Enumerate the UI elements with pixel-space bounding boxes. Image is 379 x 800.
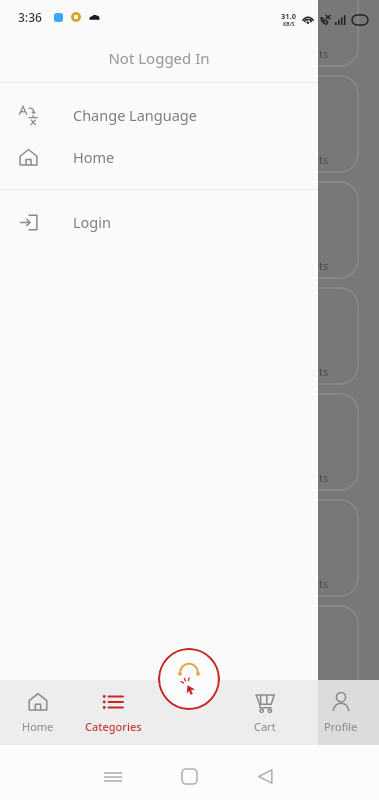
- staticText: Home: [22, 719, 54, 734]
- staticText: Categories: [85, 719, 142, 734]
- button[interactable]: Categories: [75, 680, 151, 745]
- staticText: 31.0: [281, 11, 296, 21]
- staticText: KB/S: [283, 21, 295, 28]
- button[interactable]: Home: [0, 680, 75, 745]
- button[interactable]: Recent apps: [75, 753, 151, 800]
- staticText: ts: [319, 258, 329, 273]
- staticText: ts: [319, 152, 329, 167]
- staticText: 3:36: [18, 9, 42, 25]
- staticText: Cart: [254, 719, 276, 734]
- staticText: ts: [319, 470, 329, 485]
- button[interactable]: Change Language: [0, 94, 318, 136]
- staticText: Change Language: [73, 105, 197, 125]
- button[interactable]: Customer support: [158, 648, 220, 710]
- button[interactable]: Home: [151, 753, 227, 800]
- button[interactable]: Back: [227, 753, 303, 800]
- button[interactable]: Login: [0, 201, 318, 243]
- staticText: 57: [305, 17, 312, 25]
- staticText: Profile: [324, 719, 358, 734]
- staticText: Login: [73, 212, 111, 232]
- staticText: Home: [73, 147, 115, 167]
- staticText: ts: [319, 46, 329, 61]
- button[interactable]: Cart: [227, 680, 303, 745]
- button[interactable]: Home: [0, 136, 318, 178]
- staticText: ts: [319, 364, 329, 379]
- staticText: Not Logged In: [108, 48, 210, 68]
- button[interactable]: Profile: [303, 680, 379, 745]
- staticText: ts: [319, 576, 329, 591]
